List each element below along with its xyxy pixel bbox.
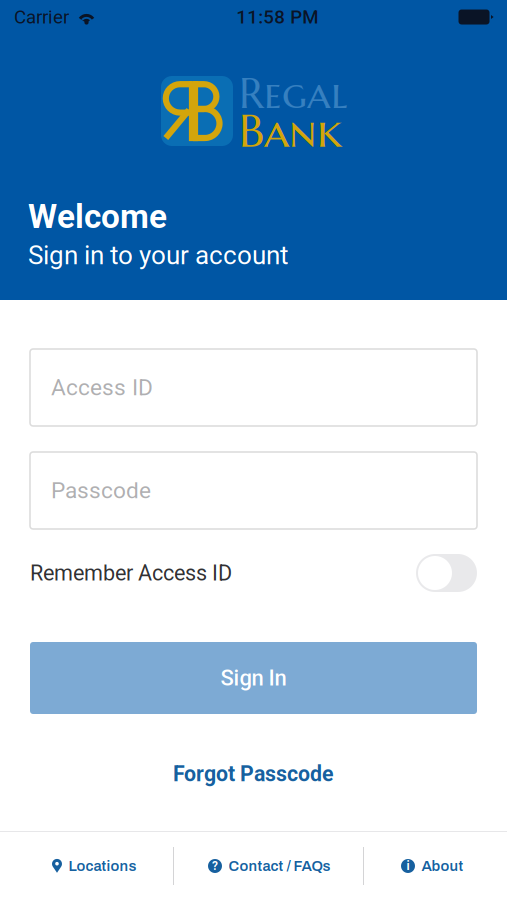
staticText: i [406,859,409,873]
button[interactable]: ? [206,832,332,900]
staticText: Remember Access ID [30,560,232,586]
button[interactable]: i [399,832,465,900]
staticText: Sign in to your account [28,240,289,271]
button[interactable]: Sign In [30,642,477,714]
button[interactable]: Locations [50,832,138,900]
button[interactable]: Forgot Passcode [30,757,477,791]
staticText: Locations [68,858,136,874]
staticText: 11:58 PM [236,6,318,28]
staticText: Welcome [28,197,167,236]
staticText: Bank [239,103,342,159]
staticText: About [421,858,463,874]
staticText: Passcode [51,477,151,504]
button[interactable]: Passcode [30,452,477,529]
staticText: Regal [239,67,348,120]
staticText: Sign In [220,665,286,691]
staticText: Access ID [51,374,153,401]
staticText: Carrier [14,6,69,28]
staticText: Contact / FAQs [228,858,330,874]
staticText: Forgot Passcode [173,761,334,786]
staticText: ? [212,859,218,873]
button[interactable]: Access ID [30,349,477,426]
button[interactable]: Remember Access ID [416,554,477,592]
